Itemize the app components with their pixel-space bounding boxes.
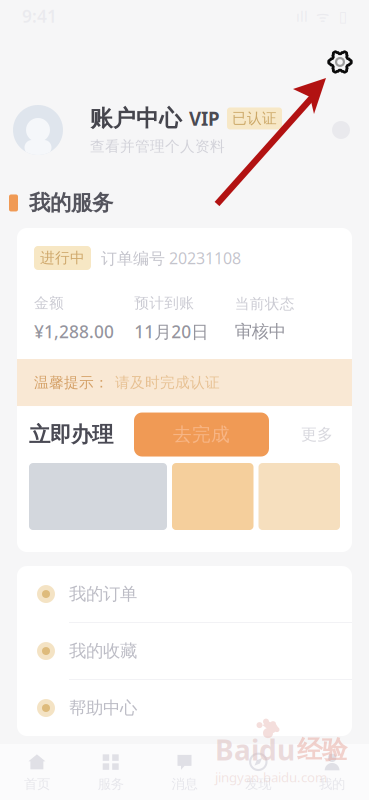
staticText: 我的订单: [69, 583, 137, 605]
staticText: 消息: [171, 776, 197, 792]
staticText: 温馨提示：: [34, 373, 109, 391]
staticText: 我的服务: [29, 190, 113, 216]
button[interactable]: 帮助中心: [17, 680, 352, 736]
staticText: 当前状态: [235, 295, 295, 313]
button[interactable]: Settings: [318, 40, 362, 84]
staticText: 9:41: [22, 4, 57, 27]
staticText: 经验: [297, 734, 347, 765]
button[interactable]: More: [325, 114, 357, 146]
staticText: 首页: [24, 776, 50, 792]
button[interactable]: 发现: [221, 744, 295, 800]
staticText: 订单编号 20231108: [101, 247, 241, 269]
staticText: 立即办理: [29, 421, 113, 448]
staticText: 审核中: [235, 321, 286, 342]
staticText: 金额: [34, 294, 64, 312]
staticText: VIP: [189, 106, 220, 131]
staticText: 预计到账: [134, 294, 194, 312]
button[interactable]: 服务: [74, 744, 148, 800]
staticText: ¥1,288.00: [34, 320, 114, 343]
button[interactable]: 首页: [0, 744, 74, 800]
staticText: Baidu: [215, 731, 295, 768]
button[interactable]: 我的收藏: [17, 623, 352, 679]
staticText: 已认证: [232, 109, 277, 127]
staticText: 查看并管理个人资料: [90, 137, 225, 155]
staticText: 我的: [319, 776, 345, 792]
button[interactable]: 我的订单: [17, 566, 352, 622]
staticText: 更多: [301, 425, 333, 444]
staticText: 账户中心: [90, 104, 182, 132]
staticText: 服务: [98, 776, 124, 792]
staticText: 11月20日: [134, 320, 208, 343]
staticText: 帮助中心: [69, 697, 137, 719]
staticText: 发现: [245, 776, 271, 792]
button[interactable]: 去完成: [134, 412, 269, 456]
button[interactable]: 我的: [295, 744, 369, 800]
staticText: 进行中: [40, 249, 85, 267]
staticText: 我的收藏: [69, 640, 137, 662]
button[interactable]: 消息: [148, 744, 221, 800]
staticText: 去完成: [173, 423, 230, 446]
staticText: jingyan.baidu.com: [215, 768, 327, 786]
staticText: 请及时完成认证: [115, 373, 220, 391]
